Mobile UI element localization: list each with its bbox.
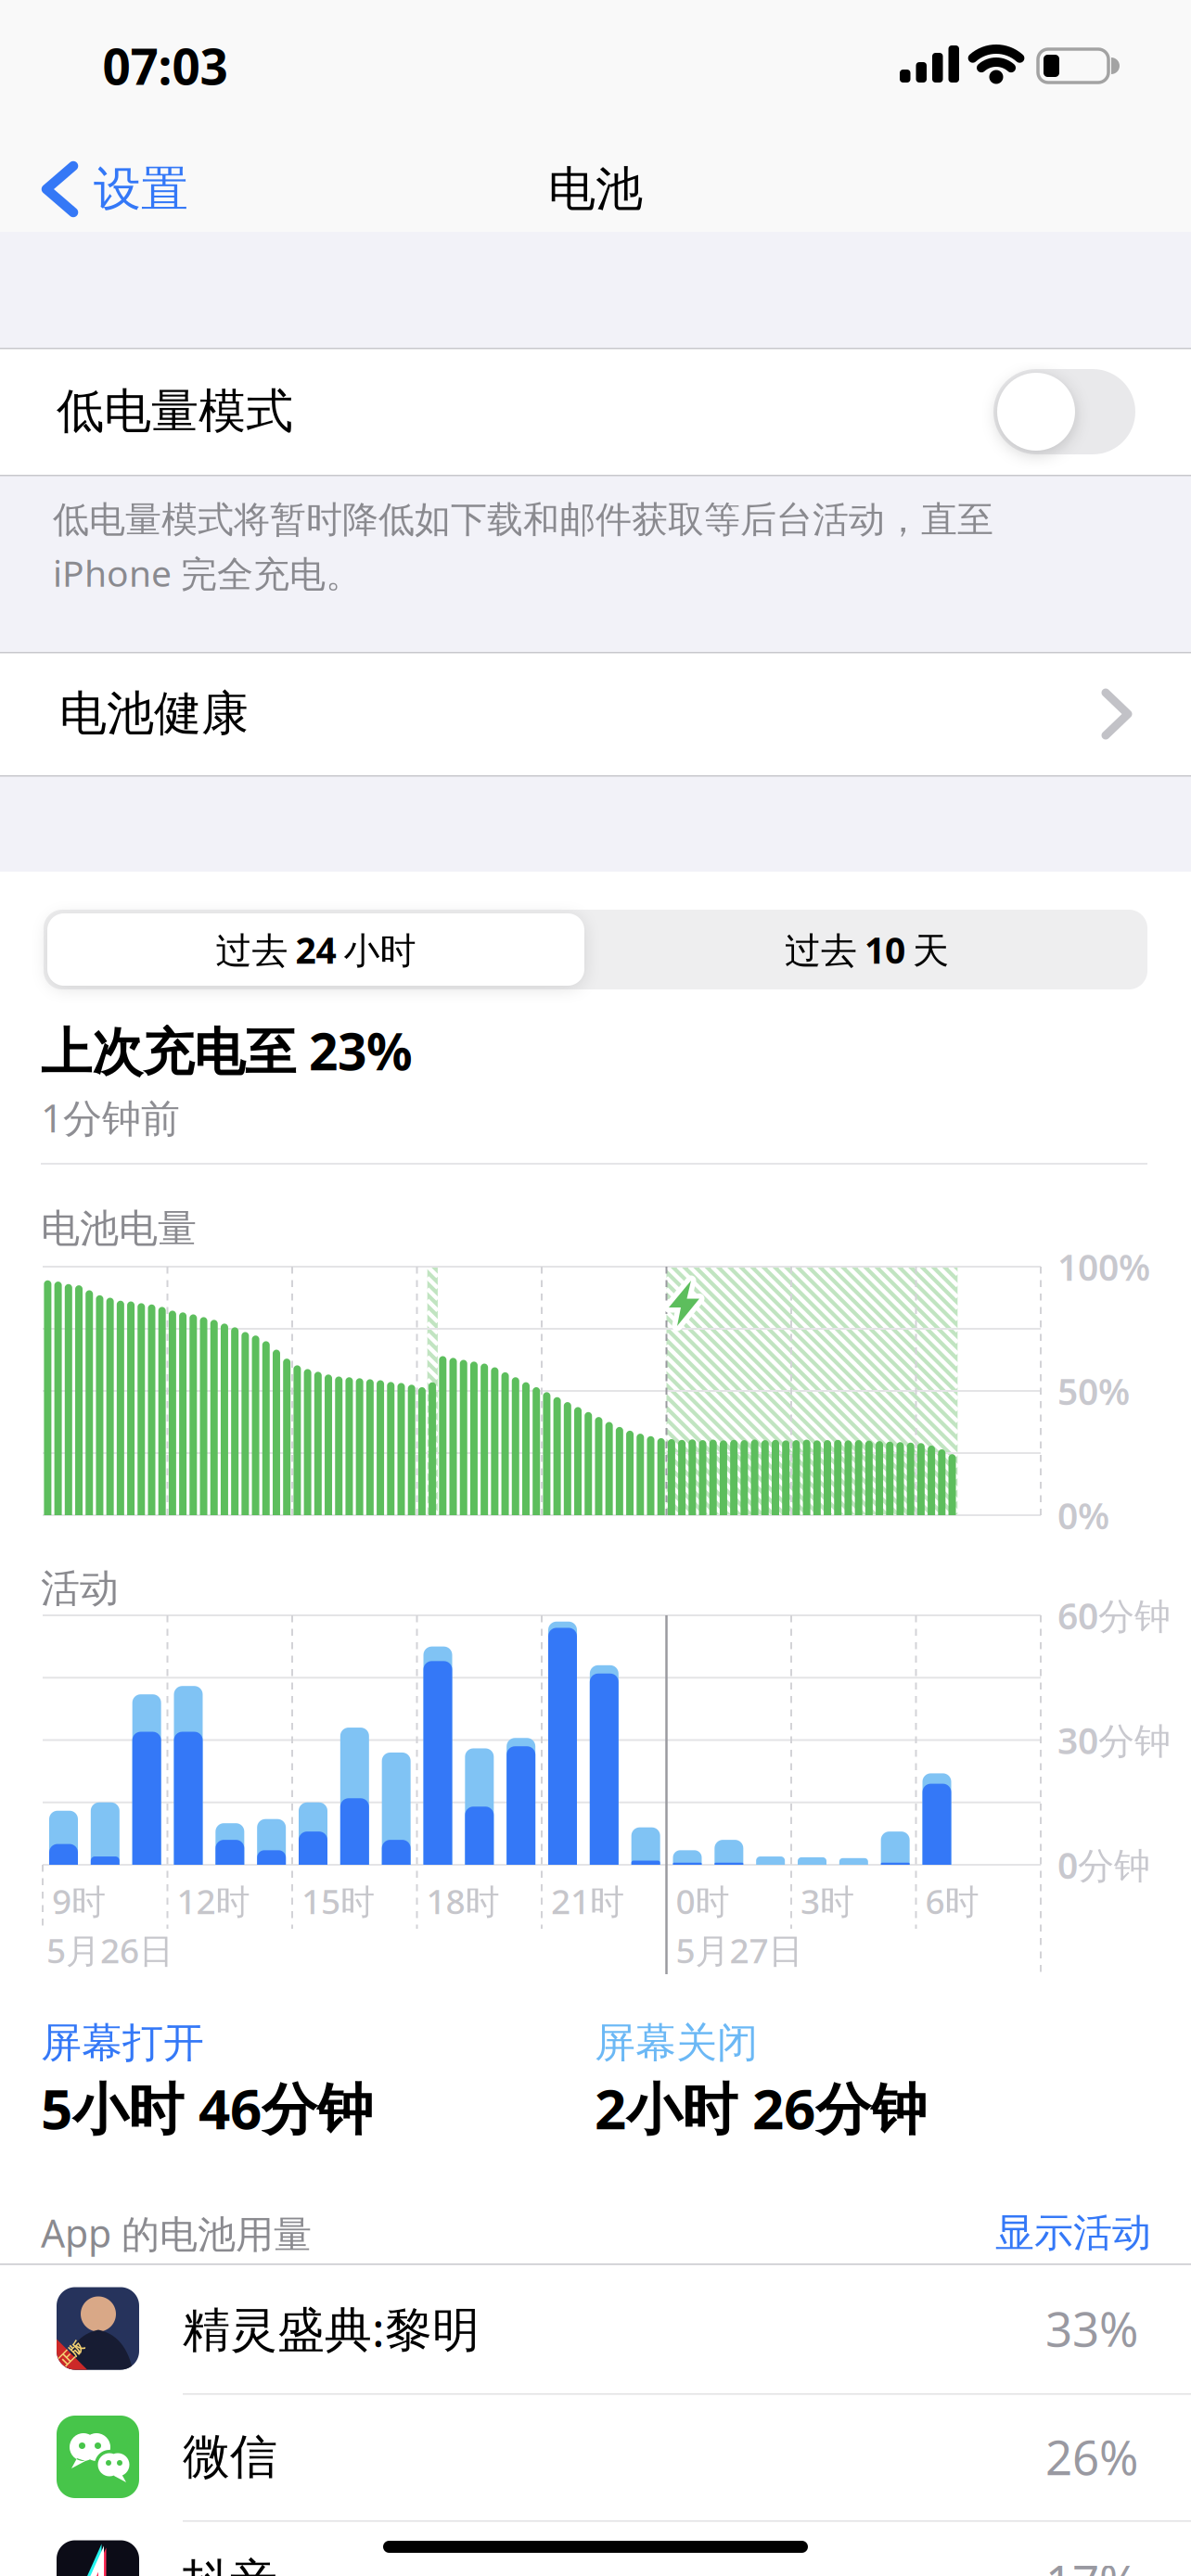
staticText: 5小时 46分钟: [41, 2070, 373, 2146]
staticText: 上次充电至 23%: [41, 1016, 413, 1085]
staticText: 1分钟前: [41, 1091, 180, 1144]
button[interactable]: 低电量模式: [993, 369, 1135, 454]
staticText: 精灵盛典:黎明: [183, 2296, 480, 2361]
staticText: 07:03: [102, 32, 228, 99]
staticText: 33%: [1045, 2296, 1138, 2361]
button[interactable]: 过去 24 小时: [47, 913, 584, 986]
staticText: 26%: [1045, 2425, 1138, 2489]
staticText: 17%: [1045, 2549, 1138, 2576]
staticText: 电池健康: [59, 684, 249, 743]
staticText: 屏幕关闭: [595, 2017, 758, 2068]
staticText: 0时: [676, 1878, 730, 1924]
staticText: 3时: [800, 1878, 854, 1924]
staticText: 60分钟: [1057, 1591, 1171, 1640]
button[interactable]: 正版: [0, 2264, 1191, 2393]
staticText: 正版: [58, 2345, 85, 2362]
staticText: 电池: [548, 159, 643, 219]
staticText: 0%: [1057, 1491, 1109, 1540]
staticText: 18时: [426, 1878, 499, 1924]
staticText: 12时: [177, 1878, 250, 1924]
staticText: 电池电量: [41, 1204, 197, 1253]
staticText: 50%: [1057, 1366, 1130, 1416]
button[interactable]: 显示活动: [873, 2211, 1151, 2255]
staticText: 6时: [925, 1878, 979, 1924]
button[interactable]: 设置: [43, 159, 188, 219]
staticText: 30分钟: [1057, 1715, 1171, 1765]
staticText: 21时: [551, 1878, 624, 1924]
staticText: 过去 10 天: [785, 926, 949, 974]
staticText: 屏幕打开: [41, 2017, 204, 2068]
staticText: 显示活动: [995, 2208, 1151, 2257]
button[interactable]: 微信: [0, 2393, 1191, 2520]
staticText: 2小时 26分钟: [595, 2070, 927, 2146]
staticText: 5月27日: [676, 1927, 803, 1973]
staticText: 15时: [301, 1878, 375, 1924]
staticText: 5月26日: [46, 1927, 173, 1973]
button[interactable]: 电池健康: [0, 652, 1191, 775]
button[interactable]: 抖音: [0, 2520, 1191, 2576]
staticText: 100%: [1057, 1242, 1150, 1291]
staticText: App 的电池用量: [41, 2207, 312, 2259]
staticText: 0分钟: [1057, 1840, 1150, 1889]
staticText: 抖音: [183, 2552, 277, 2576]
staticText: 活动: [41, 1564, 119, 1613]
staticText: 低电量模式: [57, 381, 293, 441]
staticText: 9时: [52, 1878, 106, 1924]
staticText: 设置: [94, 159, 188, 219]
staticText: 微信: [183, 2427, 277, 2487]
button[interactable]: 过去 10 天: [586, 910, 1147, 989]
staticText: 过去 24 小时: [216, 926, 416, 974]
staticText: 低电量模式将暂时降低如下载和邮件获取等后台活动，直至 iPhone 完全充电。: [53, 497, 993, 598]
